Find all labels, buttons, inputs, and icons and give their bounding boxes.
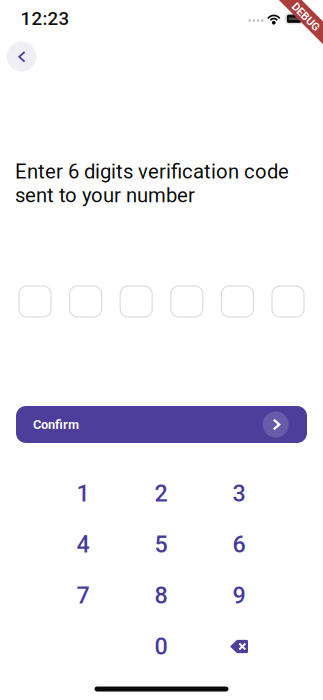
staticText: 3 [232,480,245,507]
button[interactable]: 0 [122,621,200,672]
button[interactable]: 4 [44,519,122,570]
staticText: 1 [76,480,89,507]
staticText: 0 [154,633,167,660]
staticText: 8 [154,582,167,609]
button[interactable]: 5 [122,519,200,570]
staticText: 4 [76,531,89,558]
staticText: 2 [154,480,167,507]
staticText: 6 [232,531,245,558]
button[interactable]: 8 [122,570,200,621]
button[interactable]: 1 [44,468,122,519]
staticText: Confirm [33,417,79,432]
staticText: 9 [232,582,245,609]
staticText: Enter 6 digits verification code sent to… [15,160,289,207]
staticText: 7 [76,582,89,609]
staticText: DEBUG [288,10,323,23]
button[interactable]: Back [6,41,36,71]
staticText: 12:23 [20,8,69,29]
button[interactable]: Confirm [16,406,307,443]
button[interactable]: 6 [200,519,278,570]
staticText: 5 [154,531,167,558]
button[interactable]: 7 [44,570,122,621]
button[interactable]: 2 [122,468,200,519]
button[interactable]: 3 [200,468,278,519]
button[interactable]: 9 [200,570,278,621]
button[interactable]: Delete [200,621,278,672]
